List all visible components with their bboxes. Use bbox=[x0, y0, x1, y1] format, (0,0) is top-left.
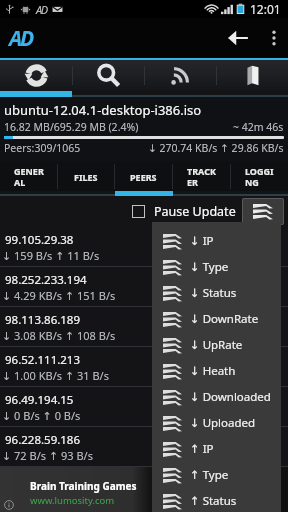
staticText: ↓ DownRate bbox=[190, 311, 259, 327]
staticText: ubuntu-12.04.1-desktop-i386.iso bbox=[4, 101, 202, 119]
button[interactable]: 96.52.111.213 bbox=[0, 347, 288, 386]
button[interactable]: ↑ IP bbox=[152, 436, 281, 462]
staticText: LOGGI NG bbox=[245, 165, 274, 188]
button[interactable]: Brain Training Games bbox=[0, 467, 288, 512]
button[interactable]: App logo bbox=[9, 21, 43, 55]
staticText: AD bbox=[36, 2, 47, 17]
staticText: ↓ Type bbox=[190, 259, 229, 275]
staticText: ↑ Type bbox=[190, 467, 229, 483]
staticText: ↓ 72 B/s ↑ 93 B/s bbox=[2, 448, 93, 463]
staticText: ↑ IP bbox=[190, 441, 214, 457]
staticText: ~ 42m 46s bbox=[233, 120, 284, 134]
button[interactable]: Feeds bbox=[144, 60, 216, 91]
staticText: Peers:309/1065 bbox=[4, 141, 81, 155]
button[interactable]: Torrents bbox=[0, 60, 72, 91]
staticText: ↑ Status bbox=[190, 493, 237, 509]
button[interactable]: TRACK ER bbox=[172, 162, 230, 191]
button[interactable]: ↓ Status bbox=[152, 280, 281, 306]
staticText: TRACK ER bbox=[187, 165, 216, 188]
staticText: Brain Training Games bbox=[30, 479, 137, 493]
button[interactable]: ↓ IP bbox=[152, 228, 281, 254]
staticText: www.lumosity.com bbox=[30, 494, 115, 507]
staticText: FILES bbox=[74, 171, 98, 183]
button[interactable]: More options bbox=[260, 18, 288, 58]
staticText: ↓ Heath bbox=[190, 363, 236, 379]
button[interactable]: ↓ UpRate bbox=[152, 332, 281, 358]
button[interactable]: 99.105.29.38 bbox=[0, 227, 288, 266]
button[interactable]: Pause Update bbox=[130, 196, 238, 227]
staticText: Pause Update bbox=[154, 203, 236, 220]
button[interactable]: 96.49.194.15 bbox=[0, 387, 288, 426]
staticText: 96.30.121.58 bbox=[5, 472, 74, 488]
staticText: 98.252.233.194 bbox=[5, 272, 87, 288]
staticText: 99.105.29.38 bbox=[5, 232, 74, 248]
button[interactable]: Files bbox=[216, 60, 288, 91]
other: Ad info bbox=[4, 500, 14, 510]
button[interactable]: ↓ Uploaded bbox=[152, 410, 281, 436]
staticText: 98.113.86.189 bbox=[5, 312, 81, 328]
button[interactable]: 96.228.59.186 bbox=[0, 427, 288, 466]
button[interactable]: ↓ DownRate bbox=[152, 306, 281, 332]
staticText: ↓ 0 B/s ↑ 0 B/s bbox=[2, 408, 81, 423]
button[interactable]: Sort peers bbox=[242, 198, 284, 225]
button[interactable]: GENER AL bbox=[0, 162, 57, 191]
button[interactable]: Search bbox=[72, 60, 144, 91]
button[interactable]: Back bbox=[216, 18, 260, 58]
staticText: ↓ 12 B/s ↑ 5 B/s bbox=[2, 488, 87, 503]
button[interactable]: FILES bbox=[57, 162, 114, 191]
staticText: ↓ Uploaded bbox=[190, 415, 256, 431]
button[interactable]: ↓ Heath bbox=[152, 358, 281, 384]
button[interactable]: ↓ Downloaded bbox=[152, 384, 281, 410]
staticText: 96.228.59.186 bbox=[5, 432, 81, 448]
staticText: ↓ IP bbox=[190, 233, 214, 249]
button[interactable]: ↑ Status bbox=[152, 488, 281, 512]
staticText: ↓ Status bbox=[190, 285, 237, 301]
button[interactable]: LOGGI NG bbox=[230, 162, 288, 191]
staticText: PEERS bbox=[130, 171, 157, 183]
staticText: ↓ UpRate bbox=[190, 337, 243, 353]
staticText: 96.49.194.15 bbox=[5, 392, 74, 408]
button[interactable]: ↓ Type bbox=[152, 254, 281, 280]
staticText: AD bbox=[9, 24, 33, 53]
staticText: ↓ 1.00 KB/s ↑ 31 B/s bbox=[2, 368, 109, 383]
staticText: ↓ 3.08 KB/s ↑ 108 B/s bbox=[2, 328, 116, 343]
staticText: GENER AL bbox=[14, 165, 44, 188]
button[interactable]: PEERS bbox=[114, 162, 172, 191]
button[interactable]: ↑ Type bbox=[152, 462, 281, 488]
button[interactable]: 96.30.121.58 bbox=[0, 467, 288, 506]
staticText: 12:01 bbox=[250, 1, 281, 17]
staticText: ↓ 159 B/s ↑ 11 B/s bbox=[2, 248, 100, 263]
staticText: ↓ 4.29 KB/s ↑ 151 B/s bbox=[2, 288, 116, 303]
staticText: 16.82 MB/695.29 MB (2.4%) bbox=[4, 120, 139, 134]
staticText: ↓ 270.74 KB/s ↑ 29.86 KB/s bbox=[148, 141, 284, 155]
staticText: 96.52.111.213 bbox=[5, 352, 81, 368]
staticText: ↓ Downloaded bbox=[190, 389, 271, 405]
button[interactable]: 98.113.86.189 bbox=[0, 307, 288, 346]
button[interactable]: 98.252.233.194 bbox=[0, 267, 288, 306]
